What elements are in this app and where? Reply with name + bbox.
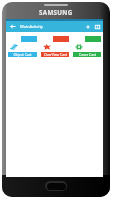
staticText: Object Cast (13, 52, 32, 57)
button[interactable]: Object Cast (8, 52, 37, 57)
button[interactable]: Back (6, 21, 20, 32)
staticText: MainActivity (20, 24, 43, 29)
button[interactable]: Cover Cast (73, 52, 101, 57)
button[interactable]: Add (83, 21, 92, 32)
button[interactable]: Save (92, 21, 103, 32)
staticText: SAMSUNG (39, 8, 73, 16)
staticText: Cover Cast (79, 52, 96, 57)
staticText: OverView Cast (44, 52, 67, 57)
button[interactable]: OverView Cast (41, 52, 69, 57)
